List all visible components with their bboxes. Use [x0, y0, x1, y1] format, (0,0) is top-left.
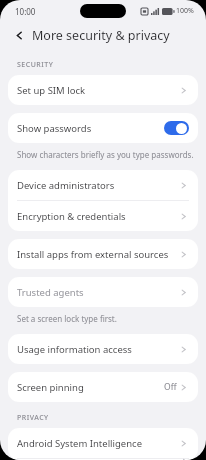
staticText: Show passwords — [17, 122, 164, 135]
staticText: Set up SIM lock — [17, 84, 180, 97]
staticText: Set a screen lock type first. — [17, 313, 117, 324]
staticText: Android System Intelligence — [17, 437, 180, 450]
staticText: SECURITY — [17, 60, 54, 70]
button[interactable]: Device administrators — [8, 170, 198, 200]
staticText: Usage information access — [17, 343, 180, 356]
button[interactable]: Encryption & credentials — [8, 201, 198, 231]
button[interactable]: Install apps from external sources — [8, 239, 198, 269]
staticText: Show characters briefly as you type pass… — [17, 149, 194, 160]
staticText: PRIVACY — [17, 413, 49, 423]
button[interactable]: Back — [8, 25, 28, 45]
button[interactable]: Trusted agents — [8, 277, 198, 307]
staticText: Install apps from external sources — [17, 248, 180, 261]
staticText: 10:00 — [15, 6, 36, 17]
button[interactable]: Autofill service from Google — [8, 459, 198, 460]
button[interactable]: Usage information access — [8, 334, 198, 364]
button[interactable]: Show passwords — [8, 113, 198, 143]
staticText: Off — [164, 381, 177, 393]
button[interactable]: Screen pinning — [8, 372, 198, 402]
button[interactable]: Set up SIM lock — [8, 75, 198, 105]
staticText: 100% — [176, 6, 194, 16]
staticText: More security & privacy — [32, 27, 170, 44]
staticText: Trusted agents — [17, 286, 180, 299]
staticText: Encryption & credentials — [17, 210, 180, 223]
staticText: Device administrators — [17, 179, 180, 192]
button[interactable]: Android System Intelligence — [8, 428, 198, 458]
staticText: Screen pinning — [17, 381, 164, 394]
